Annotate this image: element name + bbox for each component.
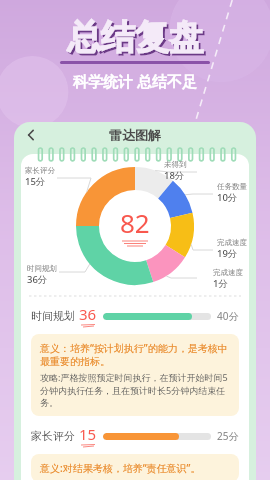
staticText: 完成速度 <box>213 268 243 277</box>
staticText: 任务数量 <box>217 182 247 191</box>
staticText: 40分 <box>217 309 239 323</box>
button[interactable]: 家长评分 <box>21 424 249 448</box>
staticText: 82 <box>120 205 150 240</box>
staticText: 科学统计 总结不足 <box>73 71 197 91</box>
staticText: 25分 <box>217 429 239 443</box>
staticText: 家长评分 <box>25 166 55 175</box>
staticText: 意义：培养“按计划执行”的能力，是考核中最重要的指标。 <box>40 341 230 368</box>
staticText: 36分 <box>27 273 48 286</box>
staticText: 36 <box>79 304 97 324</box>
staticText: 15 <box>79 424 97 444</box>
button[interactable]: 时间规划 <box>21 304 249 328</box>
staticText: 未得到 <box>164 160 187 169</box>
staticText: 完成速度 <box>217 238 247 247</box>
staticText: 时间规划 <box>27 264 57 273</box>
staticText: 15分 <box>25 175 46 188</box>
staticText: 家长评分 <box>31 429 75 443</box>
staticText: 雷达图解 <box>109 127 161 143</box>
staticText: 总结复盘 <box>69 18 205 61</box>
staticText: 时间规划 <box>31 309 75 323</box>
staticText: 意义:对结果考核，培养“责任意识”。 <box>40 461 201 475</box>
staticText: 10分 <box>217 191 238 204</box>
button[interactable]: 返回 <box>18 122 44 148</box>
staticText: 19分 <box>217 247 238 260</box>
staticText: 总结复盘 <box>67 16 203 59</box>
staticText: 攻略:严格按照预定时间执行，在预计开始时间5分钟内执行任务，且在预计时长5分钟内… <box>40 371 230 409</box>
staticText: 1分 <box>213 277 228 290</box>
staticText: 18分 <box>164 169 185 182</box>
